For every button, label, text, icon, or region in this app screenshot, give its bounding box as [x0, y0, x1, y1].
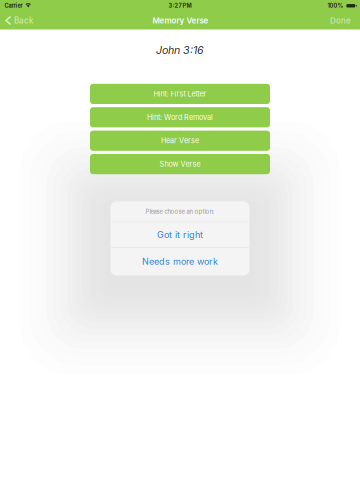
staticText: Got it right	[157, 229, 203, 240]
staticText: Memory Verse	[152, 16, 208, 25]
staticText: Please choose an option:	[145, 208, 214, 215]
button[interactable]: Needs more work	[110, 248, 250, 275]
staticText: Carrier	[4, 2, 22, 9]
staticText: Hear Verse	[161, 136, 199, 145]
staticText: Hint: First Letter	[153, 89, 206, 98]
button[interactable]: Done	[321, 11, 360, 30]
staticText: 100%	[328, 2, 344, 9]
button[interactable]: Show Verse	[90, 154, 270, 174]
button[interactable]: Got it right	[110, 222, 250, 247]
staticText: Hint: Word Removal	[147, 113, 213, 122]
button[interactable]: Back	[0, 11, 40, 30]
button[interactable]: Hint: Word Removal	[90, 107, 270, 127]
button[interactable]: Hear Verse	[90, 131, 270, 151]
staticText: Needs more work	[142, 256, 218, 267]
staticText: 3:27 PM	[168, 2, 191, 9]
staticText: Back	[14, 15, 34, 25]
staticText: John 3:16	[156, 44, 204, 57]
button[interactable]: Hint: First Letter	[90, 84, 270, 104]
staticText: Show Verse	[159, 160, 200, 169]
staticText: Done	[330, 16, 351, 25]
